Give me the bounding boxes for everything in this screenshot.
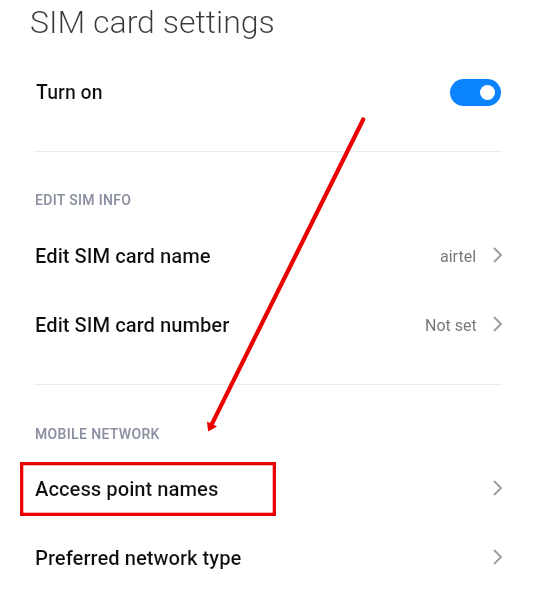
staticText: Edit SIM card number xyxy=(35,313,230,337)
button[interactable]: Turn on xyxy=(0,66,536,118)
button[interactable]: Edit SIM card name xyxy=(0,230,536,282)
staticText: airtel xyxy=(440,247,477,266)
button[interactable]: Access point names xyxy=(0,463,536,515)
staticText: Not set xyxy=(425,316,477,335)
staticText: Preferred network type xyxy=(35,546,242,570)
button[interactable]: Edit SIM card number xyxy=(0,299,536,351)
staticText: EDIT SIM INFO xyxy=(35,192,132,208)
button[interactable]: Preferred network type xyxy=(0,532,536,584)
staticText: Access point names xyxy=(35,477,219,501)
staticText: Turn on xyxy=(36,81,103,104)
staticText: MOBILE NETWORK xyxy=(35,426,160,442)
staticText: Edit SIM card name xyxy=(35,244,211,268)
staticText: SIM card settings xyxy=(30,3,275,41)
button[interactable]: Turn on SIM xyxy=(450,79,501,106)
